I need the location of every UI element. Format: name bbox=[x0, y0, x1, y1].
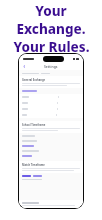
staticText: Your Rules. bbox=[13, 38, 90, 56]
staticText: School Timeframe bbox=[22, 123, 46, 127]
button[interactable] bbox=[22, 175, 80, 177]
button[interactable] bbox=[19, 112, 83, 118]
staticText: Match Timeframe bbox=[22, 163, 45, 167]
staticText: General Exchange bbox=[22, 78, 46, 82]
staticText: Exchange. bbox=[16, 20, 86, 38]
button[interactable] bbox=[19, 100, 83, 106]
button[interactable]: Back bbox=[22, 64, 27, 69]
staticText: Your bbox=[35, 2, 67, 20]
button[interactable] bbox=[19, 94, 83, 100]
staticText: Settings bbox=[44, 64, 58, 69]
button[interactable] bbox=[19, 106, 83, 112]
